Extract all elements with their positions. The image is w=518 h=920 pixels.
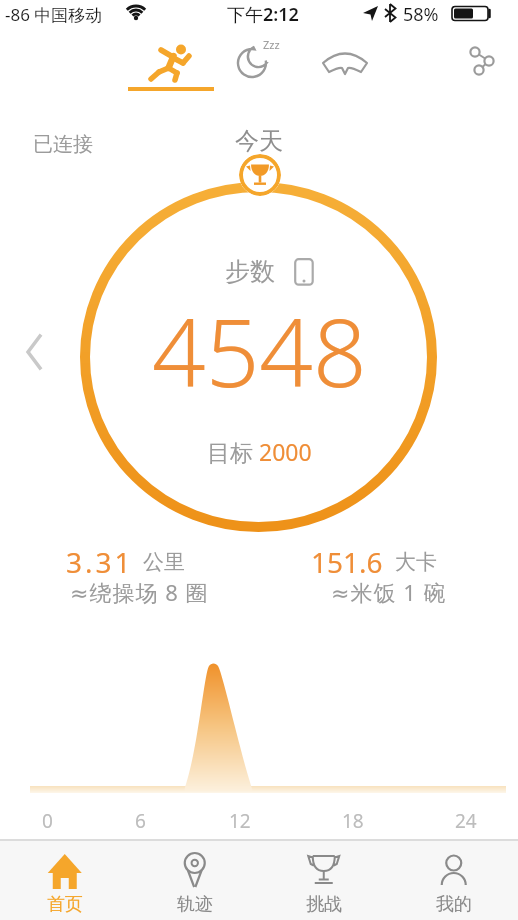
staticText: 18 bbox=[342, 808, 364, 834]
staticText: 0 bbox=[42, 808, 53, 834]
staticText: 挑战 bbox=[306, 893, 342, 916]
staticText: 目标 bbox=[207, 436, 259, 467]
staticText: 公里 bbox=[143, 549, 185, 575]
button[interactable] bbox=[316, 40, 376, 82]
button[interactable]: 挑战 bbox=[259, 839, 389, 920]
staticText: 已连接 bbox=[33, 132, 93, 157]
staticText: Zzz bbox=[263, 37, 280, 52]
staticText: 58% bbox=[403, 2, 439, 27]
staticText: 大卡 bbox=[395, 549, 437, 575]
staticText: -86 中国移动 bbox=[5, 3, 103, 26]
staticText: ≈绕操场 8 圈 bbox=[70, 577, 209, 607]
staticText: 24 bbox=[455, 808, 477, 834]
button[interactable] bbox=[24, 332, 44, 372]
staticText: 今天 bbox=[235, 126, 283, 156]
staticText: ≈米饭 1 碗 bbox=[331, 577, 447, 607]
staticText: 下午2:12 bbox=[227, 2, 299, 27]
staticText: 轨迹 bbox=[177, 893, 213, 916]
staticText: 3.31 bbox=[66, 543, 134, 581]
button[interactable]: 我的 bbox=[389, 839, 518, 920]
button[interactable]: Zzz bbox=[226, 36, 284, 88]
button[interactable]: 首页 bbox=[0, 839, 130, 920]
staticText: 12 bbox=[229, 808, 251, 834]
staticText: 151.6 bbox=[311, 543, 383, 581]
button[interactable]: 轨迹 bbox=[130, 839, 260, 920]
staticText: 首页 bbox=[47, 893, 83, 916]
staticText: 6 bbox=[135, 808, 146, 834]
button[interactable] bbox=[128, 36, 216, 92]
staticText: 2000 bbox=[259, 436, 312, 467]
staticText: 我的 bbox=[436, 893, 472, 916]
staticText: 4548 bbox=[152, 287, 367, 415]
button[interactable] bbox=[458, 38, 510, 86]
staticText: 步数 bbox=[225, 256, 275, 287]
